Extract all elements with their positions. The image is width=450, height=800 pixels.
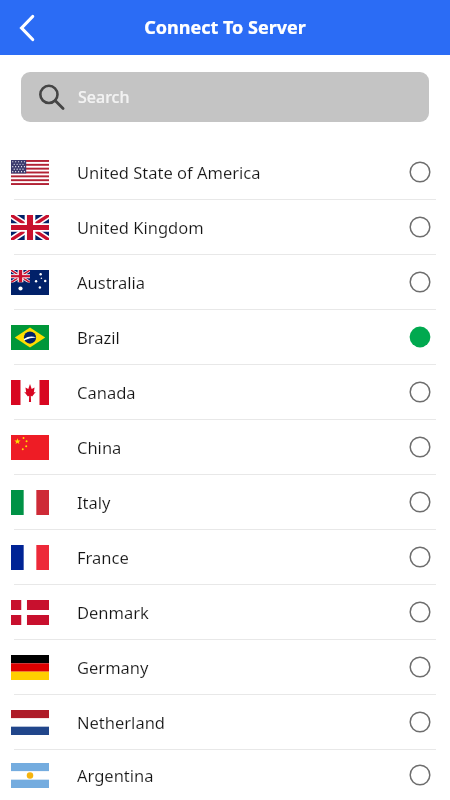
- button[interactable]: Back: [6, 6, 50, 50]
- staticText: Germany: [77, 656, 409, 678]
- button[interactable]: United State of America: [0, 145, 450, 200]
- button[interactable]: Netherland: [0, 695, 450, 750]
- button[interactable]: Australia: [0, 255, 450, 310]
- button[interactable]: China: [0, 420, 450, 475]
- staticText: Argentina: [77, 764, 409, 786]
- button[interactable]: Denmark: [0, 585, 450, 640]
- staticText: United Kingdom: [77, 216, 409, 238]
- staticText: Brazil: [77, 326, 409, 348]
- button[interactable]: Argentina: [0, 750, 450, 800]
- staticText: Denmark: [77, 601, 409, 623]
- button[interactable]: United Kingdom: [0, 200, 450, 255]
- staticText: United State of America: [77, 161, 409, 183]
- staticText: Search: [78, 86, 130, 108]
- staticText: France: [77, 546, 409, 568]
- button[interactable]: Brazil: [0, 310, 450, 365]
- staticText: China: [77, 436, 409, 458]
- button[interactable]: Search: [21, 72, 429, 122]
- staticText: Canada: [77, 381, 409, 403]
- button[interactable]: France: [0, 530, 450, 585]
- staticText: Australia: [77, 271, 409, 293]
- button[interactable]: Italy: [0, 475, 450, 530]
- button[interactable]: Germany: [0, 640, 450, 695]
- staticText: Connect To Server: [144, 15, 306, 40]
- staticText: Italy: [77, 491, 409, 513]
- staticText: Netherland: [77, 711, 409, 733]
- button[interactable]: Canada: [0, 365, 450, 420]
